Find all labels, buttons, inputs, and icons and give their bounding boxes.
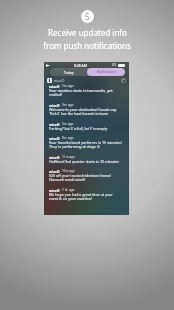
button[interactable]: wizzO xyxy=(44,136,129,155)
staticText: wizzO xyxy=(54,78,65,83)
button[interactable]: wizzO xyxy=(44,84,129,103)
staticText: Parking? Lot X is full, lot P is empty xyxy=(49,126,108,131)
staticText: 1m ago xyxy=(62,84,74,88)
button[interactable]: wizzO xyxy=(44,103,129,122)
staticText: 11m ago xyxy=(62,155,76,159)
staticText: Your vacation starts in two weeks, get e… xyxy=(49,88,113,98)
button[interactable]: Notifications xyxy=(87,68,125,76)
staticText: wizzO xyxy=(49,169,60,173)
staticText: 1 hr ago xyxy=(62,188,75,192)
button[interactable]: Clear notifications xyxy=(121,78,126,83)
staticText: wizzO xyxy=(49,103,60,107)
button[interactable]: Today xyxy=(50,68,87,76)
staticText: wizzO xyxy=(49,155,60,159)
button[interactable]: wizzO xyxy=(44,188,129,207)
staticText: Welcome to your destination! Locals say … xyxy=(49,107,117,117)
staticText: LTE xyxy=(112,63,117,67)
staticText: 5m ago xyxy=(62,122,74,126)
staticText: 16m ago xyxy=(62,169,76,173)
staticText: 5 xyxy=(85,11,90,22)
staticText: Halftime! 3rd quarter starts in 25 minut… xyxy=(49,159,120,164)
button[interactable]: wizzO xyxy=(44,122,129,136)
staticText: Receive updated info xyxy=(48,27,127,38)
staticText: 8m ago xyxy=(62,136,74,140)
button[interactable]: wizzO xyxy=(44,155,129,169)
staticText: We hope you had a great time at your eve… xyxy=(49,192,113,202)
staticText: wizzO xyxy=(49,188,60,192)
staticText: $20 off your trusted rideshare home! Dis… xyxy=(49,173,112,183)
staticText: wizzO xyxy=(49,136,60,140)
staticText: wizzO xyxy=(49,122,60,126)
staticText: 3m ago xyxy=(62,103,74,107)
staticText: from push notifications xyxy=(43,40,131,51)
staticText: 9:38 AM xyxy=(74,63,87,68)
button[interactable]: Step 5 xyxy=(81,10,94,23)
staticText: Notifications xyxy=(97,70,116,74)
button[interactable]: wizzO xyxy=(44,169,129,188)
staticText: Today xyxy=(64,70,74,75)
staticText: wizzO xyxy=(49,84,60,88)
staticText: Your favorite band performs in 15 minute… xyxy=(49,140,122,150)
